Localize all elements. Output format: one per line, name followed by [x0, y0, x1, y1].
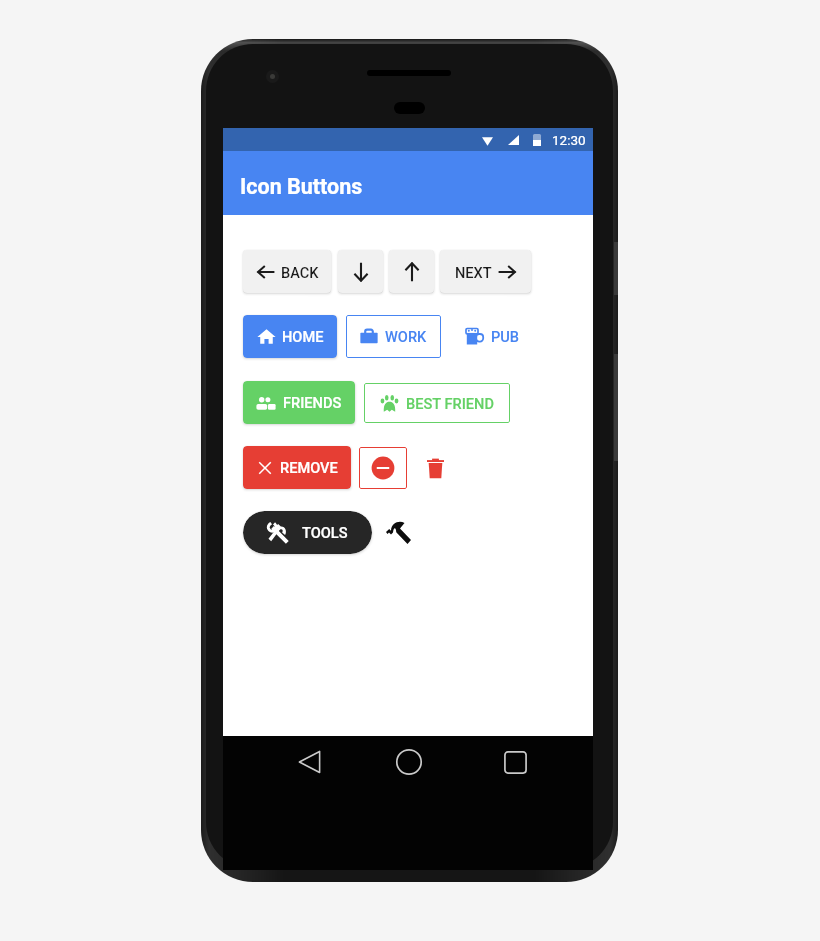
- button[interactable]: Hammer: [380, 511, 416, 554]
- button[interactable]: BACK: [243, 250, 331, 293]
- staticText: TOOLS: [302, 524, 348, 541]
- button[interactable]: BEST FRIEND: [364, 383, 510, 423]
- staticText: NEXT: [455, 264, 492, 281]
- staticText: FRIENDS: [283, 394, 342, 411]
- button[interactable]: [389, 250, 434, 293]
- button[interactable]: FRIENDS: [243, 381, 355, 424]
- button[interactable]: HOME: [243, 315, 337, 358]
- button[interactable]: Back: [285, 738, 333, 786]
- staticText: REMOVE: [280, 459, 338, 476]
- button[interactable]: Delete: [415, 448, 455, 488]
- button[interactable]: Block: [359, 447, 407, 489]
- staticText: PUB: [491, 328, 520, 345]
- staticText: BACK: [281, 264, 319, 281]
- button[interactable]: PUB: [464, 315, 520, 358]
- button[interactable]: REMOVE: [243, 446, 351, 489]
- staticText: WORK: [385, 328, 427, 345]
- button[interactable]: NEXT: [440, 250, 531, 293]
- staticText: Icon Buttons: [240, 174, 363, 199]
- button[interactable]: [338, 250, 383, 293]
- button[interactable]: Recents: [491, 738, 539, 786]
- button[interactable]: TOOLS: [243, 511, 372, 554]
- button[interactable]: WORK: [346, 315, 441, 358]
- staticText: HOME: [282, 328, 324, 345]
- staticText: 12:30: [552, 132, 586, 148]
- button[interactable]: Home: [385, 738, 433, 786]
- staticText: BEST FRIEND: [406, 395, 494, 412]
